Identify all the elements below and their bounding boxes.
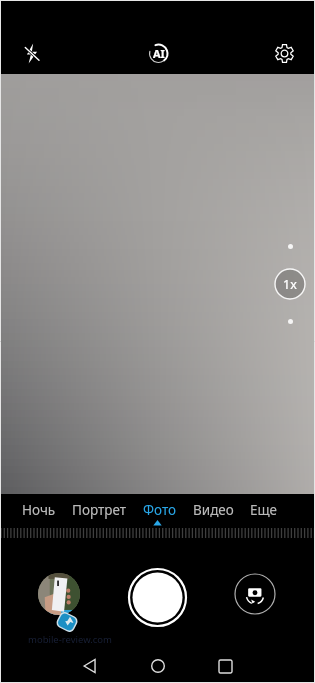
button[interactable]: Recent apps: [209, 650, 241, 682]
button[interactable]: Zoom 1x: [274, 268, 306, 300]
button[interactable]: Switch camera: [234, 573, 276, 615]
button[interactable]: Ночь: [22, 501, 56, 519]
button[interactable]: Gallery: [38, 573, 80, 615]
button[interactable]: AI scene detection: [142, 37, 174, 69]
staticText: Еще: [250, 501, 278, 519]
staticText: Видео: [193, 501, 234, 519]
staticText: mobile-review.com: [28, 633, 112, 646]
button[interactable]: Еще: [250, 501, 278, 519]
staticText: Ночь: [22, 501, 56, 519]
staticText: Портрет: [72, 501, 127, 519]
button[interactable]: Фото: [143, 501, 177, 519]
staticText: AI: [153, 46, 165, 61]
button[interactable]: Видео: [193, 501, 234, 519]
button[interactable]: Take photo: [128, 568, 187, 627]
button[interactable]: Портрет: [72, 501, 127, 519]
button[interactable]: Back: [74, 650, 106, 682]
staticText: 1x: [283, 276, 297, 293]
button[interactable]: Home: [142, 650, 174, 682]
button[interactable]: Settings: [268, 37, 300, 69]
button[interactable]: Flash off: [16, 37, 48, 69]
staticText: Фото: [143, 501, 177, 519]
